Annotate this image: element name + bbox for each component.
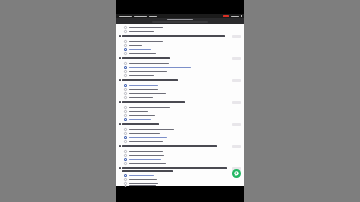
button[interactable] (119, 113, 241, 117)
button[interactable] (119, 185, 241, 186)
button[interactable] (119, 127, 241, 131)
button[interactable] (119, 47, 241, 51)
button[interactable] (119, 153, 241, 157)
button[interactable] (119, 43, 241, 47)
button[interactable] (119, 131, 241, 135)
button[interactable] (119, 105, 241, 109)
button[interactable] (119, 65, 241, 69)
button[interactable] (119, 29, 241, 33)
button[interactable] (119, 83, 241, 87)
button[interactable] (119, 149, 241, 153)
button[interactable] (119, 69, 241, 73)
button[interactable] (119, 73, 241, 77)
button[interactable] (119, 181, 241, 185)
button[interactable] (119, 161, 241, 165)
button[interactable]: Chat on WhatsApp (232, 169, 241, 178)
button[interactable] (119, 25, 241, 29)
button[interactable] (119, 61, 241, 65)
button[interactable] (119, 117, 241, 121)
button[interactable] (119, 135, 241, 139)
button[interactable] (119, 177, 241, 181)
button[interactable] (119, 91, 241, 95)
button[interactable] (119, 87, 241, 91)
button[interactable] (119, 51, 241, 55)
button[interactable] (119, 157, 241, 161)
button[interactable] (119, 95, 241, 99)
button[interactable] (119, 173, 241, 177)
button[interactable] (119, 109, 241, 113)
button[interactable]: Marks (232, 167, 241, 170)
button[interactable] (119, 39, 241, 43)
button[interactable] (119, 139, 241, 143)
